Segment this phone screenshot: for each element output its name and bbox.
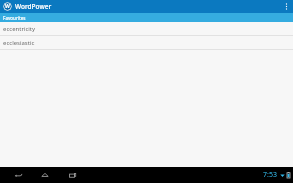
staticText: W bbox=[5, 3, 10, 10]
button[interactable]: Back bbox=[10, 167, 26, 183]
button[interactable]: eccentricity bbox=[0, 22, 293, 36]
button[interactable]: ecclesiastic bbox=[0, 36, 293, 50]
staticText: 7:53 bbox=[263, 170, 277, 180]
button[interactable]: More options bbox=[279, 0, 293, 13]
staticText: Favourites bbox=[3, 15, 26, 21]
staticText: WordPower bbox=[15, 2, 52, 11]
button[interactable]: Favourites bbox=[0, 13, 50, 22]
button[interactable]: Recent apps bbox=[64, 167, 80, 183]
button[interactable]: Home bbox=[37, 167, 53, 183]
staticText: eccentricity bbox=[3, 25, 36, 33]
staticText: ecclesiastic bbox=[3, 39, 35, 47]
